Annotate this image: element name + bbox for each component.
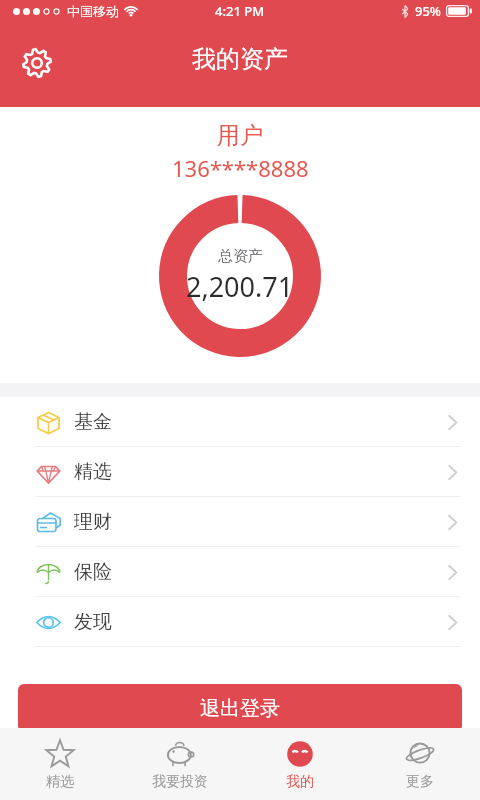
staticText: 我的资产	[192, 44, 288, 74]
staticText: 我要投资	[152, 773, 208, 791]
staticText: 2,200.71	[186, 268, 294, 305]
button[interactable]: 精选	[0, 447, 480, 497]
staticText: 退出登录	[200, 696, 280, 721]
button[interactable]: 退出登录	[18, 684, 462, 732]
staticText: 4:21 PM	[215, 2, 265, 20]
button[interactable]: 更多	[360, 728, 480, 800]
staticText: 用户	[217, 121, 263, 150]
staticText: 保险	[74, 560, 112, 584]
staticText: 中国移动	[67, 3, 119, 19]
button[interactable]: 我的	[240, 728, 360, 800]
button[interactable]: 精选	[0, 728, 120, 800]
button[interactable]: 保险	[0, 547, 480, 597]
staticText: 我的	[286, 773, 314, 791]
staticText: 精选	[46, 773, 74, 791]
staticText: 更多	[406, 773, 434, 791]
button[interactable]: Settings	[14, 40, 60, 86]
staticText: 基金	[74, 410, 112, 434]
button[interactable]: 我要投资	[120, 728, 240, 800]
staticText: 理财	[74, 510, 112, 534]
button[interactable]: 基金	[0, 397, 480, 447]
staticText: 发现	[74, 610, 112, 634]
staticText: 精选	[74, 460, 112, 484]
button[interactable]: 发现	[0, 597, 480, 647]
staticText: 总资产	[218, 247, 263, 266]
button[interactable]: 理财	[0, 497, 480, 547]
staticText: 95%	[415, 2, 441, 20]
staticText: 136****8888	[172, 153, 309, 183]
